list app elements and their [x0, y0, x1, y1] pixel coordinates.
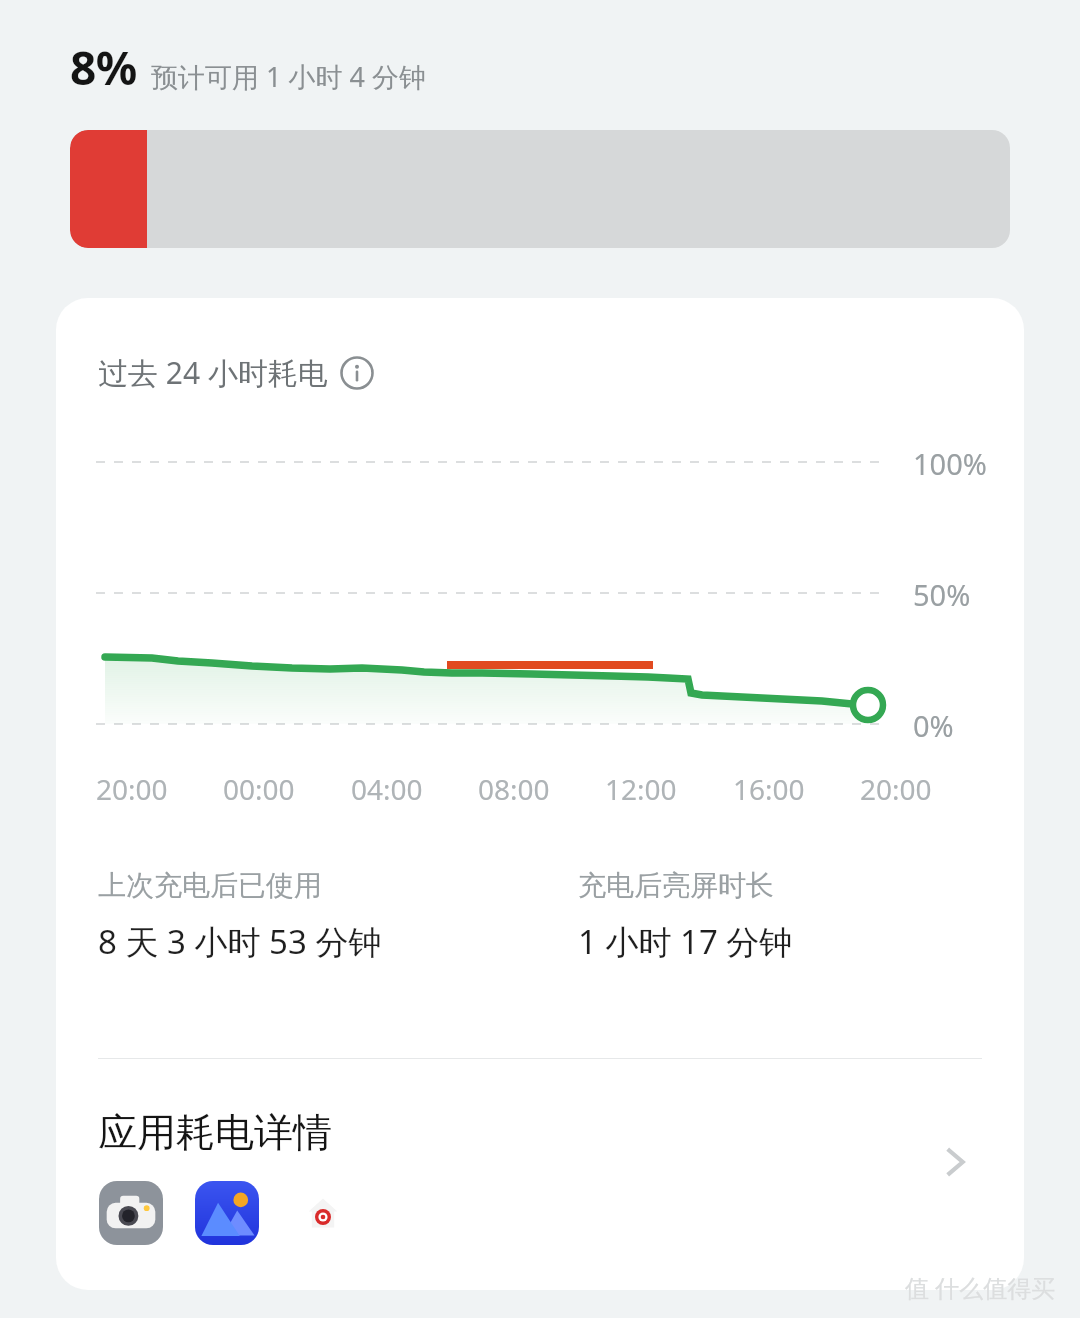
staticText: 20:00: [96, 770, 168, 808]
staticText: 应用耗电详情: [98, 1108, 332, 1157]
staticText: 上次充电后已使用: [98, 868, 322, 903]
staticText: 8%: [70, 36, 137, 99]
staticText: 8 天 3 小时 53 分钟: [98, 919, 382, 964]
staticText: 0%: [913, 706, 954, 745]
staticText: 1 小时 17 分钟: [578, 919, 793, 964]
staticText: 过去 24 小时耗电: [98, 352, 328, 393]
staticText: 16:00: [733, 770, 805, 808]
staticText: 值 什么值得买: [905, 1271, 1056, 1304]
button[interactable]: 应用耗电详情: [56, 1080, 1024, 1288]
button[interactable]: 信息: [340, 356, 374, 390]
staticText: 20:00: [860, 770, 932, 808]
staticText: 04:00: [351, 770, 423, 808]
staticText: 充电后亮屏时长: [578, 868, 774, 903]
staticText: 12:00: [605, 770, 677, 808]
staticText: 00:00: [223, 770, 295, 808]
button[interactable]: 过去 24 小时耗电: [98, 352, 374, 393]
button[interactable]: [70, 130, 1010, 248]
staticText: 08:00: [478, 770, 550, 808]
staticText: 50%: [913, 575, 971, 614]
staticText: 预计可用 1 小时 4 分钟: [151, 58, 426, 95]
other: 查看应用耗电详情: [932, 1138, 980, 1186]
staticText: 100%: [913, 444, 987, 483]
